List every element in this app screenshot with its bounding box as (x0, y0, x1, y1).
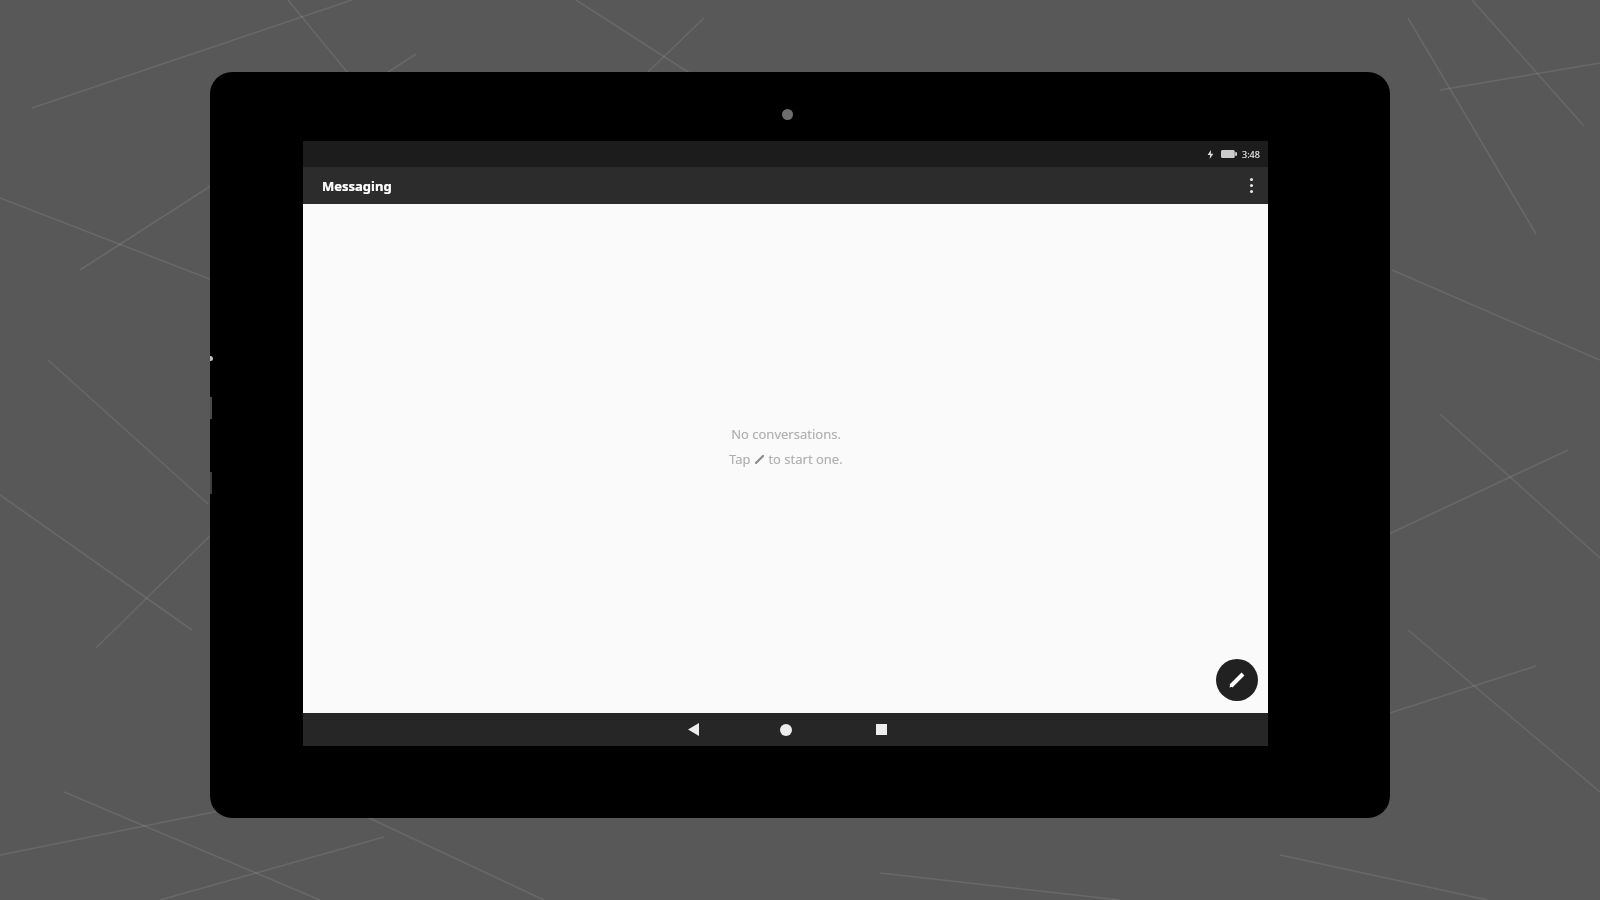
button[interactable]: More options (1234, 167, 1268, 204)
button[interactable]: Compose new message (1216, 659, 1258, 701)
staticText: Tap (729, 450, 754, 468)
staticText: to start one. (765, 450, 843, 468)
staticText: No conversations. (731, 425, 841, 443)
staticText: Messaging (322, 177, 392, 195)
staticText: 3:48 (1242, 148, 1260, 160)
button[interactable]: Back (669, 713, 717, 746)
button[interactable]: Home (762, 713, 810, 746)
button[interactable]: Recent apps (857, 713, 905, 746)
